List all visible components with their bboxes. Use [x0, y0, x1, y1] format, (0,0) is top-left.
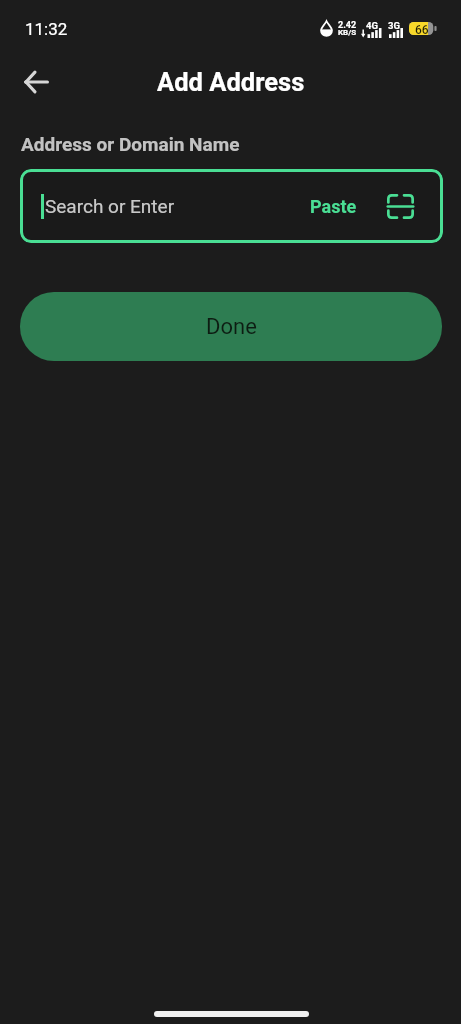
staticText: 4G — [366, 20, 378, 31]
button[interactable]: Paste — [305, 190, 362, 223]
staticText: Paste — [310, 196, 357, 217]
staticText: 2.42 — [338, 20, 357, 31]
button[interactable]: Search or Enter — [20, 169, 305, 243]
staticText: Done — [206, 314, 257, 340]
staticText: KB/S — [338, 28, 357, 37]
staticText: 11:32 — [25, 19, 68, 39]
button[interactable]: Back — [10, 56, 62, 108]
button[interactable]: Scan QR code — [384, 190, 416, 222]
staticText: Address or Domain Name — [21, 133, 240, 155]
staticText: 66 — [415, 23, 429, 37]
staticText: Add Address — [157, 67, 305, 97]
button[interactable]: Done — [20, 292, 442, 361]
staticText: 3G — [388, 20, 400, 31]
staticText: Search or Enter — [45, 195, 175, 217]
